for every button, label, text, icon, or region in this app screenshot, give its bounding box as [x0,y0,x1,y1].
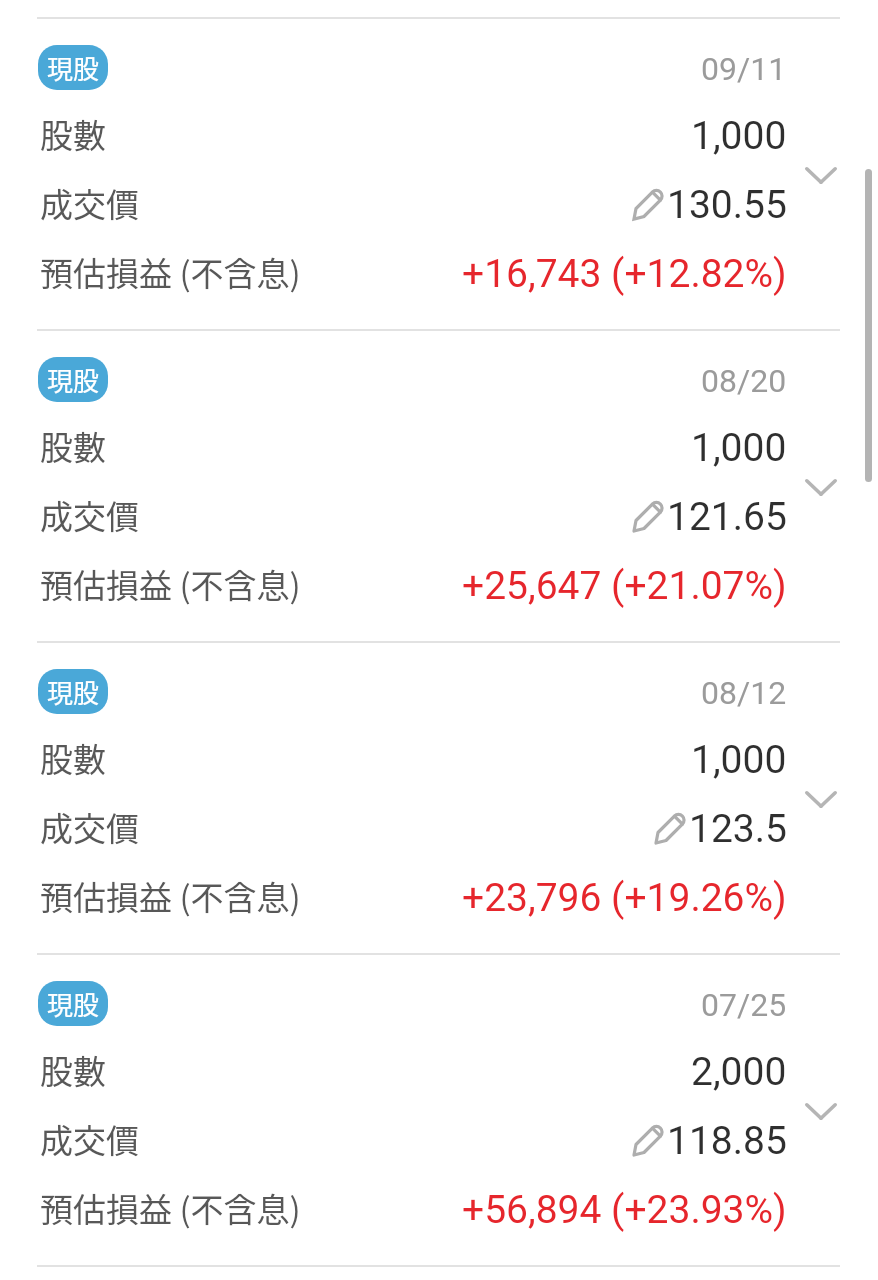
button[interactable]: 成交價 [0,491,878,537]
button[interactable]: 成交價 [0,803,878,849]
staticText: 現股 [47,673,100,711]
button[interactable]: Expand [793,1091,849,1131]
staticText: 現股 [47,361,100,399]
staticText: 123.5 [689,806,787,852]
staticText: 1,000 [691,737,787,783]
staticText: +16,743 (+12.82%) [462,251,787,297]
staticText: 09/11 [701,50,787,88]
button[interactable]: 預估損益 (不含息) [0,1184,878,1230]
button[interactable]: 預估損益 (不含息) [0,560,878,606]
button[interactable]: Expand [793,155,849,195]
button[interactable]: 股數 [0,1046,878,1092]
staticText: +23,796 (+19.26%) [462,875,787,921]
staticText: 股數 [40,110,106,156]
staticText: 1,000 [691,425,787,471]
button[interactable]: 現股 [38,981,108,1026]
button[interactable]: Expand [793,779,849,819]
button[interactable]: Edit price [628,1119,667,1159]
button[interactable]: 現股 [38,357,108,402]
staticText: 2,000 [691,1049,787,1095]
button[interactable]: 現股 [38,45,108,90]
staticText: 118.85 [667,1118,787,1164]
staticText: 股數 [40,734,106,780]
button[interactable]: Edit price [628,183,667,223]
button[interactable]: 預估損益 (不含息) [0,872,878,918]
staticText: 預估損益 (不含息) [40,560,301,606]
button[interactable]: 現股 [38,669,108,714]
staticText: 預估損益 (不含息) [40,872,301,918]
button[interactable]: 成交價 [0,1115,878,1161]
button[interactable]: 現股 [0,329,878,641]
staticText: 成交價 [40,1115,139,1161]
button[interactable]: 成交價 [0,179,878,225]
button[interactable]: 股數 [0,422,878,468]
staticText: 07/25 [701,986,787,1024]
button[interactable]: Expand [793,467,849,507]
button[interactable]: Edit price [628,495,667,535]
button[interactable]: 現股 [0,17,878,329]
staticText: 成交價 [40,803,139,849]
button[interactable]: 預估損益 (不含息) [0,248,878,294]
staticText: 股數 [40,422,106,468]
button[interactable]: 股數 [0,734,878,780]
staticText: 成交價 [40,179,139,225]
staticText: 股數 [40,1046,106,1092]
staticText: 預估損益 (不含息) [40,1184,301,1230]
button[interactable]: 股數 [0,110,878,156]
staticText: 現股 [47,985,100,1023]
staticText: 現股 [47,49,100,87]
staticText: 1,000 [691,113,787,159]
button[interactable]: 現股 [0,953,878,1265]
staticText: 08/20 [701,362,787,400]
staticText: 成交價 [40,491,139,537]
staticText: 130.55 [667,182,787,228]
button[interactable]: Edit price [650,807,689,847]
staticText: +56,894 (+23.93%) [462,1187,787,1233]
staticText: 預估損益 (不含息) [40,248,301,294]
button[interactable]: 現股 [0,641,878,953]
staticText: 08/12 [701,674,787,712]
staticText: 121.65 [667,494,787,540]
staticText: +25,647 (+21.07%) [462,563,787,609]
